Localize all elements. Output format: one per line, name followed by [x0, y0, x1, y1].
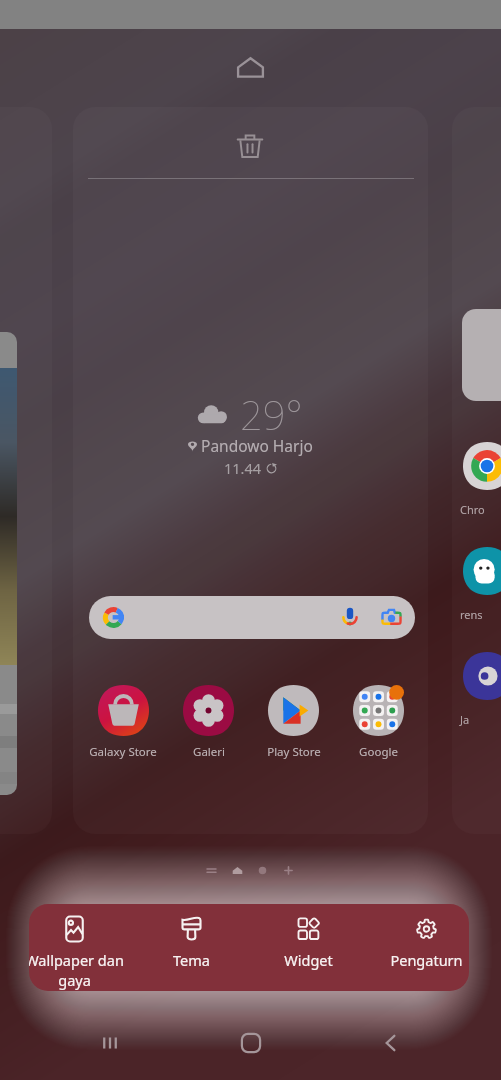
button[interactable]: Back: [360, 1012, 422, 1074]
button[interactable]: All pages: [204, 863, 219, 878]
button[interactable]: Remove page: [236, 133, 264, 161]
button[interactable]: Add page: [281, 863, 296, 878]
button[interactable]: Remove page: [73, 107, 428, 834]
staticText: Widget: [284, 950, 333, 970]
button[interactable]: Home screen: [235, 55, 266, 82]
staticText: Chro: [460, 502, 485, 517]
button[interactable]: Google: [336, 685, 421, 760]
button[interactable]: Galeri: [166, 685, 251, 760]
button[interactable]: Galaxy Store: [80, 685, 166, 760]
button[interactable]: Play Store: [251, 685, 336, 760]
button[interactable]: [0, 107, 52, 834]
staticText: Wallpaper dan gaya: [29, 950, 124, 991]
staticText: Ja: [460, 712, 470, 727]
staticText: Galaxy Store: [89, 744, 157, 760]
button[interactable]: Home: [220, 1012, 282, 1074]
staticText: Pengaturn: [390, 950, 463, 970]
button[interactable]: Recents: [79, 1012, 141, 1074]
button[interactable]: Widget: [252, 904, 364, 991]
staticText: Pandowo Harjo: [201, 435, 313, 456]
button[interactable]: Tema: [135, 904, 247, 991]
other: Google Lens: [381, 607, 402, 628]
button[interactable]: 29°: [118, 387, 383, 482]
staticText: Google: [359, 744, 398, 760]
button[interactable]: Chro: [452, 107, 501, 834]
staticText: 11.44: [224, 458, 262, 478]
staticText: Galeri: [193, 744, 225, 760]
staticText: rens: [460, 607, 483, 622]
button[interactable]: Page 2: [255, 863, 270, 878]
button[interactable]: Home page: [230, 863, 245, 878]
staticText: Tema: [173, 950, 210, 970]
other: Voice search: [339, 606, 361, 628]
staticText: Play Store: [267, 744, 321, 760]
button[interactable]: Pengaturn: [370, 904, 469, 991]
button[interactable]: Voice search: [89, 596, 415, 639]
staticText: 29°: [240, 387, 303, 441]
button[interactable]: Wallpaper dan gaya: [29, 904, 130, 991]
